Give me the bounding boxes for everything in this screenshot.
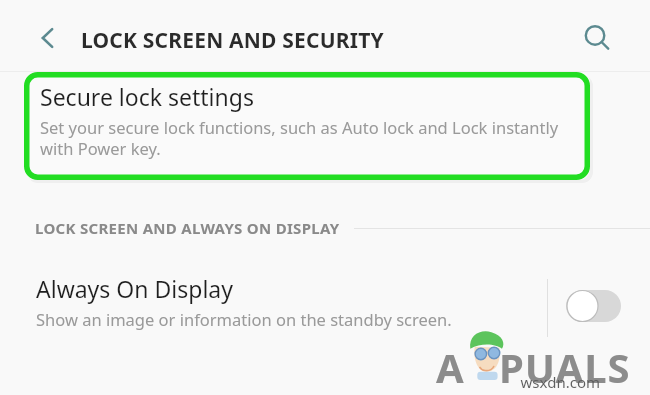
button[interactable]: Always On Display toggle: [566, 286, 628, 326]
staticText: wsxdn.com: [520, 372, 600, 392]
button[interactable]: Always On Display: [0, 267, 650, 365]
staticText: Show an image or information on the stan…: [36, 308, 466, 330]
staticText: A PUALS: [436, 340, 631, 392]
staticText: LOCK SCREEN AND ALWAYS ON DISPLAY: [35, 218, 340, 238]
button[interactable]: Back: [26, 16, 70, 60]
staticText: Always On Display: [36, 273, 233, 304]
button[interactable]: Secure lock settings: [24, 72, 590, 180]
staticText: Set your secure lock functions, such as …: [40, 116, 576, 160]
staticText: Secure lock settings: [40, 81, 254, 112]
button[interactable]: Search: [574, 15, 620, 61]
staticText: LOCK SCREEN AND SECURITY: [81, 26, 384, 55]
